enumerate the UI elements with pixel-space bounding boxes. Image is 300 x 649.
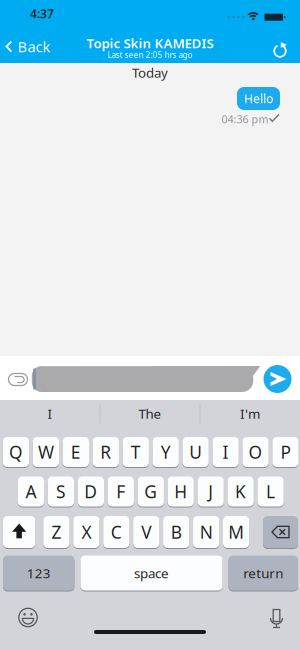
- button[interactable]: T: [123, 437, 149, 467]
- button[interactable]: K: [227, 476, 254, 506]
- staticText: I'm: [240, 405, 260, 422]
- button[interactable]: R: [93, 437, 119, 467]
- staticText: B: [171, 520, 182, 543]
- staticText: J: [208, 480, 213, 503]
- button[interactable]: I: [212, 437, 239, 467]
- button[interactable]: J: [197, 476, 224, 506]
- staticText: 123: [27, 564, 51, 582]
- staticText: I: [47, 405, 52, 422]
- button[interactable]: C: [103, 516, 129, 548]
- staticText: O: [248, 440, 262, 463]
- staticText: G: [144, 480, 157, 503]
- button[interactable]: B: [163, 516, 189, 548]
- button[interactable]: V: [133, 516, 159, 548]
- staticText: P: [280, 440, 290, 463]
- button[interactable]: L: [257, 476, 284, 506]
- staticText: U: [189, 440, 202, 463]
- button[interactable]: [3, 516, 35, 548]
- staticText: V: [141, 520, 151, 543]
- button[interactable]: P: [272, 437, 299, 467]
- staticText: K: [235, 480, 246, 503]
- button[interactable]: G: [138, 476, 164, 506]
- button[interactable]: [263, 365, 291, 393]
- button[interactable]: F: [108, 476, 134, 506]
- button[interactable]: The: [105, 401, 195, 425]
- button[interactable]: return: [228, 555, 298, 590]
- button[interactable]: O: [242, 437, 269, 467]
- button[interactable]: [270, 41, 290, 61]
- staticText: Z: [51, 520, 61, 543]
- button[interactable]: [7, 372, 28, 386]
- staticText: Q: [9, 440, 23, 463]
- button[interactable]: Z: [43, 516, 70, 548]
- staticText: X: [81, 520, 91, 543]
- staticText: Topic Skin KAMEDIS: [86, 34, 213, 52]
- staticText: Last seen 2:05 hrs ago: [107, 50, 192, 60]
- staticText: Y: [161, 440, 171, 463]
- button[interactable]: A: [18, 476, 44, 506]
- staticText: C: [111, 520, 122, 543]
- staticText: Hello: [244, 90, 273, 106]
- staticText: H: [174, 480, 187, 503]
- button[interactable]: 123: [3, 555, 74, 590]
- staticText: M: [228, 520, 244, 543]
- staticText: R: [100, 440, 111, 463]
- staticText: S: [56, 480, 66, 503]
- staticText: W: [38, 440, 54, 463]
- staticText: F: [116, 480, 125, 503]
- button[interactable]: U: [182, 437, 209, 467]
- button[interactable]: M: [223, 516, 249, 548]
- button[interactable]: I'm: [205, 401, 295, 425]
- button[interactable]: S: [48, 476, 74, 506]
- button[interactable]: Q: [3, 437, 29, 467]
- button[interactable]: N: [193, 516, 219, 548]
- staticText: return: [243, 564, 283, 582]
- staticText: I: [223, 440, 229, 463]
- staticText: The: [138, 405, 161, 422]
- button[interactable]: [18, 607, 38, 627]
- button[interactable]: Back: [5, 37, 50, 56]
- staticText: A: [25, 480, 36, 503]
- button[interactable]: [32, 366, 261, 392]
- staticText: 4:37: [30, 5, 54, 21]
- button[interactable]: [266, 608, 286, 629]
- staticText: Today: [132, 64, 168, 81]
- button[interactable]: W: [33, 437, 59, 467]
- button[interactable]: D: [78, 476, 104, 506]
- button[interactable]: space: [80, 555, 222, 590]
- button[interactable]: Y: [152, 437, 179, 467]
- staticText: N: [200, 520, 213, 543]
- button[interactable]: [263, 516, 298, 548]
- button[interactable]: H: [167, 476, 194, 506]
- button[interactable]: E: [63, 437, 89, 467]
- staticText: 04:36 pm: [221, 112, 268, 126]
- staticText: D: [84, 480, 97, 503]
- button[interactable]: X: [73, 516, 99, 548]
- staticText: E: [71, 440, 81, 463]
- staticText: L: [266, 480, 275, 503]
- staticText: Back: [17, 37, 50, 56]
- button[interactable]: I: [5, 401, 95, 425]
- staticText: T: [131, 440, 141, 463]
- staticText: space: [134, 564, 169, 582]
